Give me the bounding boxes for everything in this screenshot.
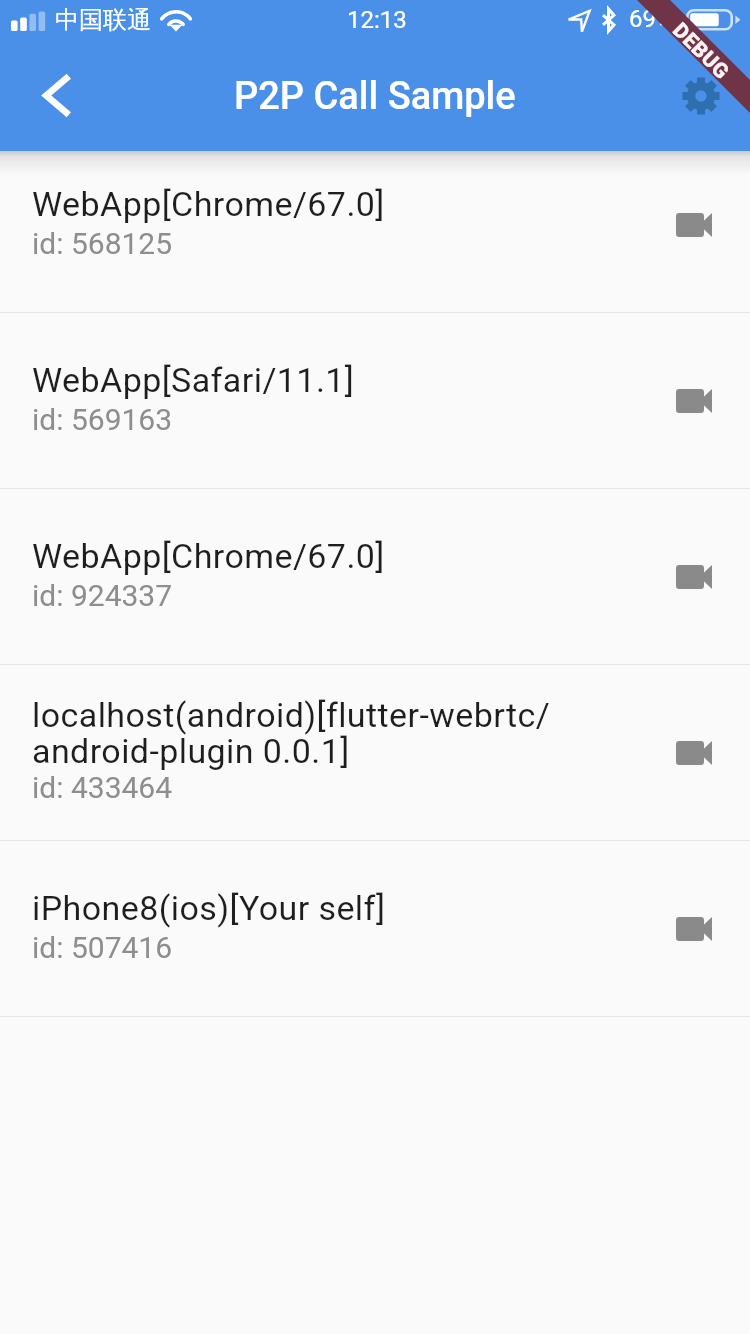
staticText: iPhone8(ios)[Your self] xyxy=(32,888,386,928)
button[interactable]: WebApp[Chrome/67.0] xyxy=(0,137,750,313)
staticText: 中国联通 xyxy=(55,5,151,35)
staticText: WebApp[Safari/11.1] xyxy=(32,360,355,400)
staticText: android-plugin 0.0.1] xyxy=(32,731,350,771)
staticText: id: 569163 xyxy=(32,402,173,437)
staticText: WebApp[Chrome/67.0] xyxy=(32,536,385,576)
button[interactable]: iPhone8(ios)[Your self] xyxy=(0,841,750,1017)
staticText: DEBUG xyxy=(667,18,734,85)
staticText: localhost(android)[flutter-webrtc/ xyxy=(32,695,551,735)
button[interactable]: localhost(android)[flutter-webrtc/ xyxy=(0,665,750,841)
staticText: id: 568125 xyxy=(32,226,173,261)
button[interactable]: Back xyxy=(15,56,95,136)
button[interactable]: WebApp[Safari/11.1] xyxy=(0,313,750,489)
staticText: 12:13 xyxy=(347,6,407,34)
button[interactable]: WebApp[Chrome/67.0] xyxy=(0,489,750,665)
staticText: id: 507416 xyxy=(32,930,173,965)
staticText: 69% xyxy=(629,5,674,33)
staticText: id: 433464 xyxy=(32,770,173,805)
staticText: WebApp[Chrome/67.0] xyxy=(32,184,385,224)
staticText: P2P Call Sample xyxy=(234,74,516,119)
staticText: id: 924337 xyxy=(32,578,173,613)
button[interactable]: Settings xyxy=(661,56,741,136)
